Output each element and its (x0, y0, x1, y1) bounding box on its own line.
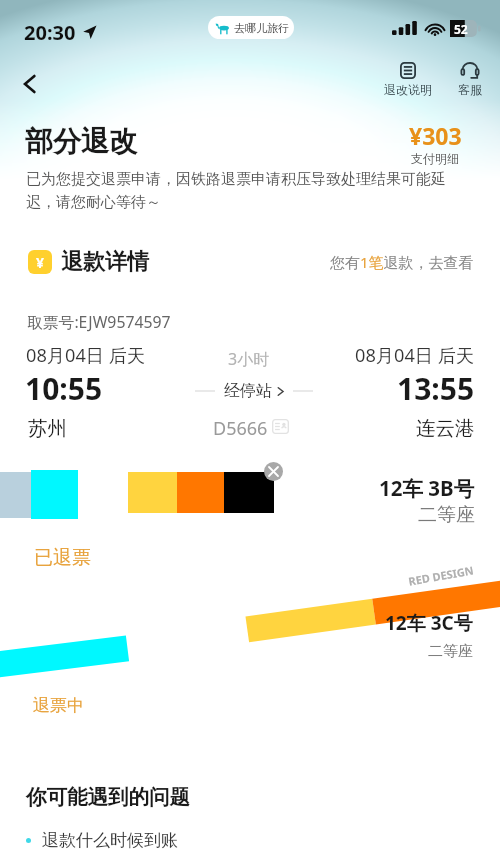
staticText: 经停站 (224, 381, 272, 401)
staticText: 退票中 (33, 695, 84, 716)
staticText: 08月04日 后天 (26, 343, 146, 368)
button[interactable]: 退改说明 (378, 62, 438, 97)
staticText: ¥303 (409, 120, 462, 151)
button[interactable]: 退款什么时候到账 (26, 830, 178, 851)
button[interactable]: ¥303 (390, 120, 480, 166)
staticText: ¥ (36, 253, 45, 272)
staticText: 10:55 (25, 368, 103, 409)
staticText: 您有1笔退款，去查看 (330, 252, 474, 272)
staticText: 取票号:EJW9574597 (27, 311, 171, 333)
staticText: 二等座 (428, 642, 473, 661)
staticText: 已为您提交退票申请，因铁路退票申请积压导致处理结果可能延迟，请您耐心等待～ (26, 170, 458, 212)
staticText: 已退票 (34, 546, 91, 570)
staticText: 12车 3B号 (379, 474, 475, 502)
staticText: 12车 3C号 (385, 610, 473, 636)
staticText: 连云港 (416, 416, 475, 441)
staticText: D5666 (213, 416, 268, 441)
staticText: 你可能遇到的问题 (26, 784, 190, 810)
button[interactable]: Back (10, 64, 50, 104)
staticText: 退改说明 (384, 82, 432, 97)
staticText: 客服 (458, 82, 482, 97)
staticText: 二等座 (418, 503, 475, 527)
staticText: 去哪儿旅行 (234, 21, 289, 35)
staticText: 支付明细 (411, 151, 459, 166)
staticText: 3小时 (228, 348, 270, 370)
button[interactable]: Close (264, 462, 283, 481)
staticText: 20:30 (24, 19, 76, 46)
button[interactable]: 客服 (452, 62, 488, 97)
staticText: 08月04日 后天 (355, 343, 475, 368)
staticText: 退款详情 (61, 248, 149, 276)
staticText: 苏州 (28, 416, 67, 441)
staticText: 13:55 (397, 368, 475, 409)
staticText: 52 (454, 21, 468, 37)
button[interactable]: 经停站 (195, 381, 313, 401)
staticText: 退款什么时候到账 (42, 830, 178, 851)
staticText: 部分退改 (25, 124, 137, 159)
button[interactable]: ¥ (28, 248, 474, 276)
staticText: RED DESIGN (407, 562, 475, 589)
